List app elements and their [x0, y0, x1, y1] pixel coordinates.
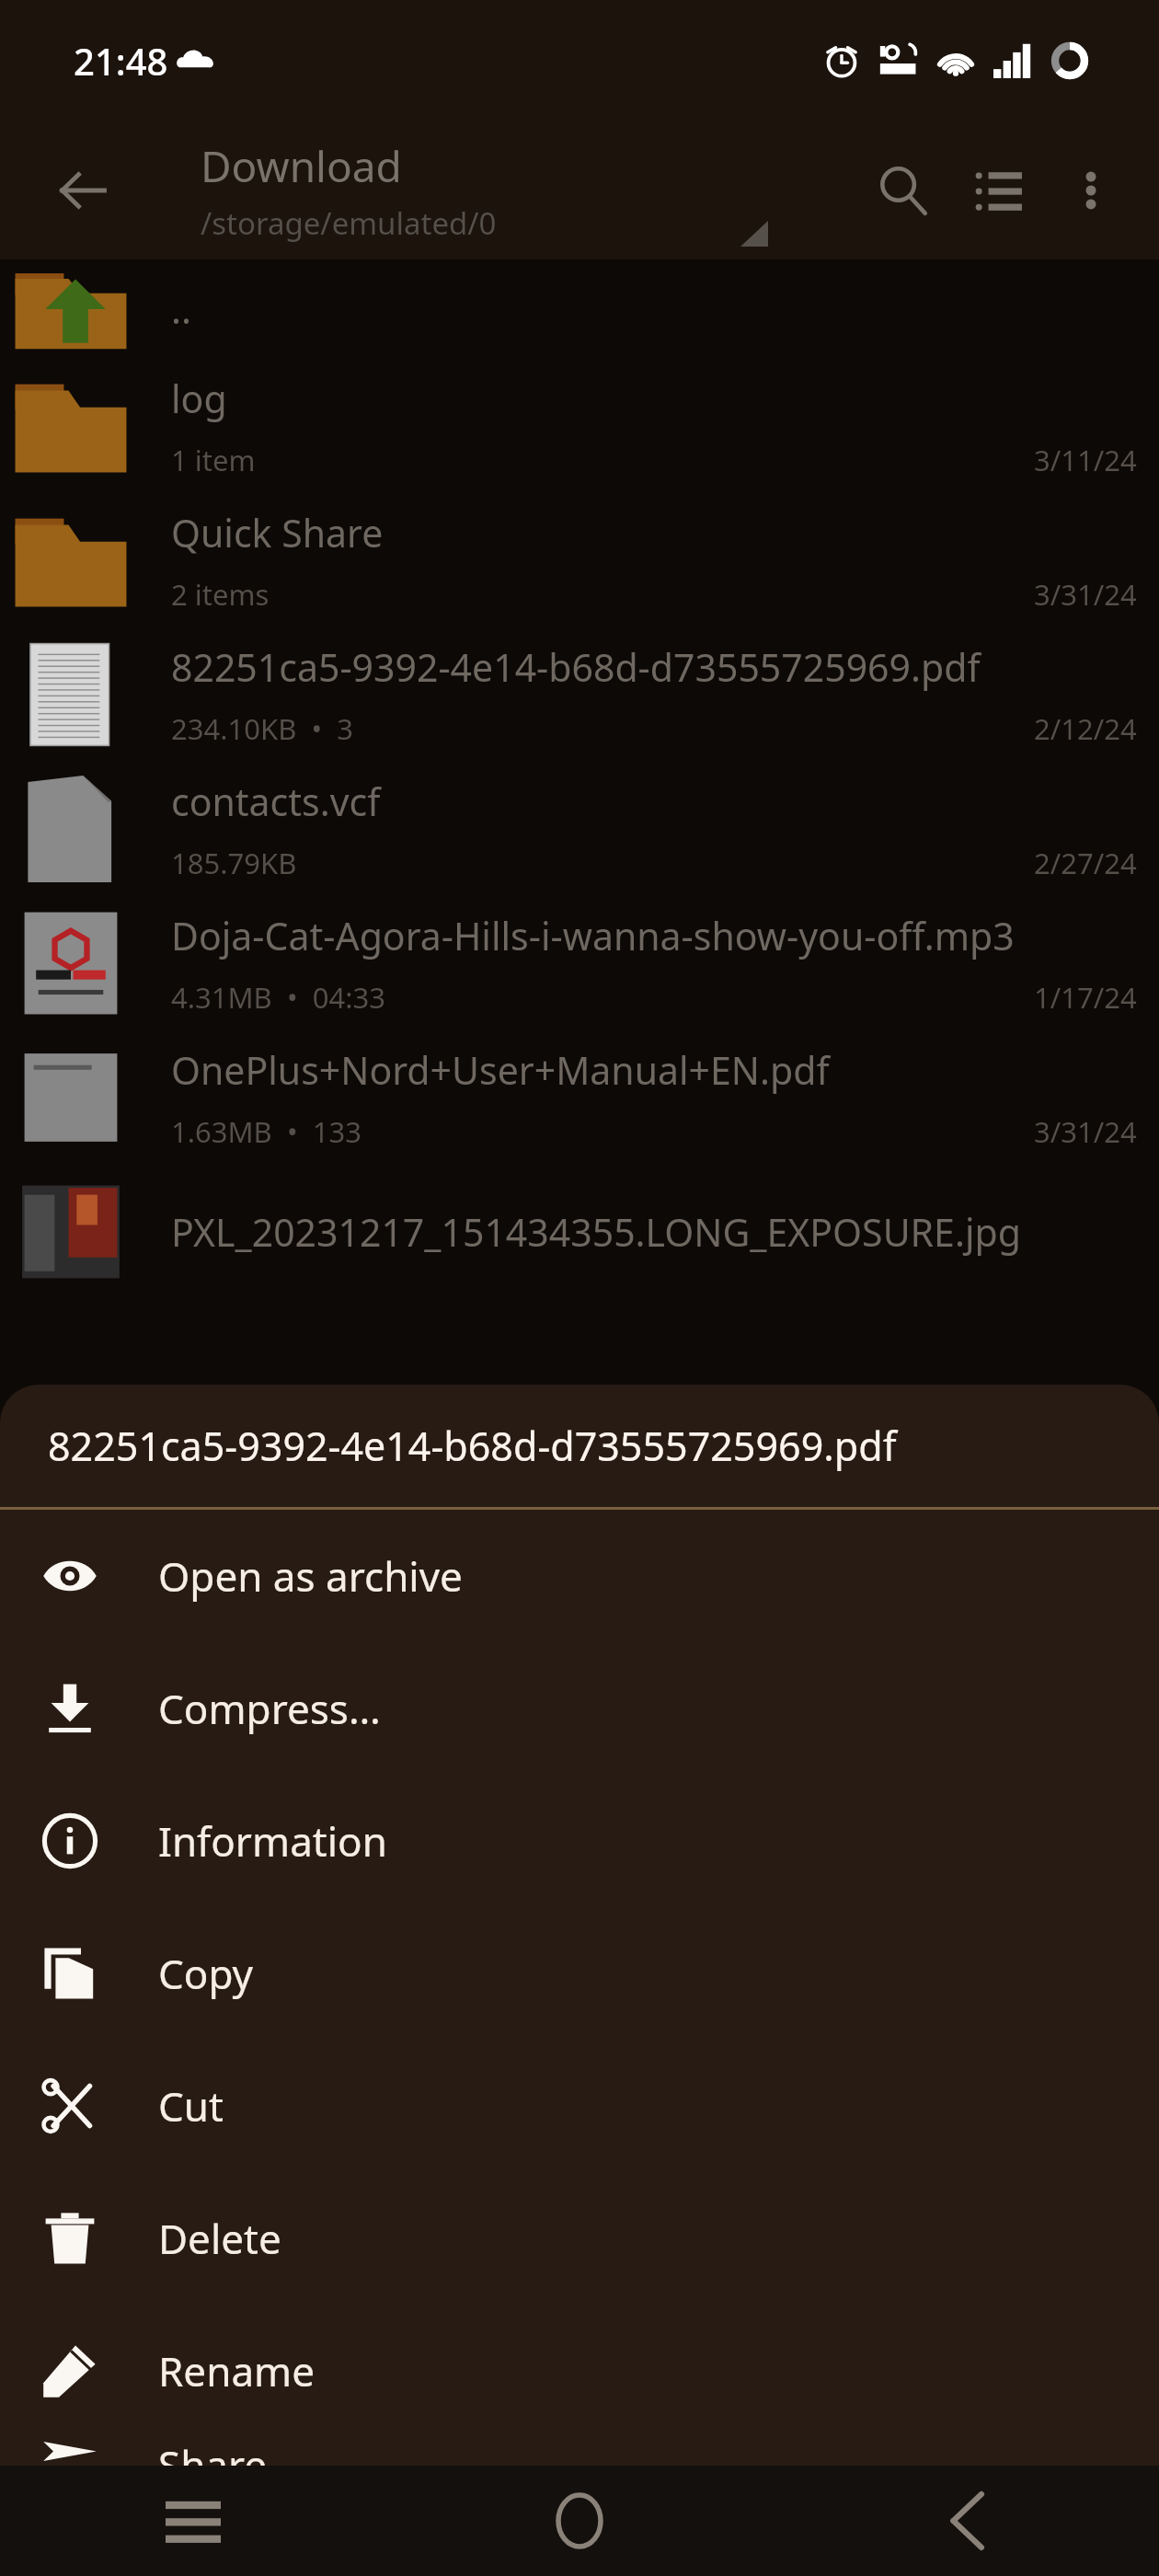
staticText: 185.79KB: [171, 844, 297, 882]
staticText: Rename: [158, 2343, 316, 2398]
button[interactable]: 82251ca5-9392-4e14-b68d-d73555725969.pdf: [0, 627, 1159, 762]
staticText: Doja-Cat-Agora-Hills-i-wanna-show-you-of…: [171, 910, 1015, 961]
button[interactable]: PXL_20231217_151434355.LONG_EXPOSURE.jpg: [0, 1165, 1159, 1299]
button[interactable]: Back: [773, 2466, 1159, 2576]
button[interactable]: Home: [386, 2466, 773, 2576]
staticText: 2 items: [171, 575, 270, 614]
button[interactable]: Open as archive: [0, 1510, 1159, 1642]
staticText: Share: [158, 2437, 268, 2466]
staticText: 82251ca5-9392-4e14-b68d-d73555725969.pdf: [171, 641, 981, 693]
staticText: Cut: [158, 2078, 224, 2133]
button[interactable]: Share: [0, 2437, 1159, 2466]
button[interactable]: Cut: [0, 2040, 1159, 2172]
staticText: Delete: [158, 2211, 281, 2266]
button[interactable]: Delete: [0, 2172, 1159, 2305]
staticText: 234.10KB • 3: [171, 709, 353, 748]
staticText: 4.31MB • 04:33: [171, 978, 385, 1017]
staticText: 3/31/24: [1034, 1112, 1137, 1151]
staticText: 3/31/24: [1034, 575, 1137, 614]
button[interactable]: Recent apps: [0, 2466, 386, 2576]
staticText: 1/17/24: [1034, 978, 1137, 1017]
button[interactable]: Compress…: [0, 1642, 1159, 1775]
button[interactable]: Doja-Cat-Agora-Hills-i-wanna-show-you-of…: [0, 896, 1159, 1030]
button[interactable]: Information: [0, 1775, 1159, 1907]
button[interactable]: More options: [1047, 146, 1135, 235]
staticText: 3/11/24: [1034, 441, 1137, 479]
staticText: contacts.vcf: [171, 776, 381, 827]
staticText: Quick Share: [171, 507, 384, 558]
staticText: /storage/emulated/0: [201, 202, 497, 244]
staticText: 1.63MB • 133: [171, 1112, 361, 1151]
button[interactable]: View mode: [951, 143, 1047, 238]
button[interactable]: ..: [0, 259, 1159, 359]
staticText: Open as archive: [158, 1548, 463, 1604]
button[interactable]: Search: [855, 143, 951, 238]
button[interactable]: Rename: [0, 2305, 1159, 2437]
button[interactable]: Quick Share: [0, 493, 1159, 627]
button[interactable]: Copy: [0, 1907, 1159, 2040]
staticText: Information: [158, 1813, 387, 1869]
staticText: Compress…: [158, 1681, 381, 1736]
staticText: Download: [201, 137, 402, 195]
staticText: Copy: [158, 1946, 254, 2001]
button[interactable]: OnePlus+Nord+User+Manual+EN.pdf: [0, 1030, 1159, 1165]
staticText: 2/27/24: [1034, 844, 1137, 882]
staticText: log: [171, 373, 227, 424]
staticText: 1 item: [171, 441, 256, 479]
button[interactable]: contacts.vcf: [0, 762, 1159, 896]
button[interactable]: log: [0, 359, 1159, 493]
staticText: 21:48: [74, 36, 168, 86]
staticText: ..: [171, 283, 191, 335]
staticText: PXL_20231217_151434355.LONG_EXPOSURE.jpg: [171, 1206, 1021, 1258]
staticText: 82251ca5-9392-4e14-b68d-d73555725969.pdf: [48, 1419, 897, 1473]
staticText: 2/12/24: [1034, 709, 1137, 748]
staticText: OnePlus+Nord+User+Manual+EN.pdf: [171, 1044, 830, 1096]
button[interactable]: Back: [37, 144, 129, 236]
